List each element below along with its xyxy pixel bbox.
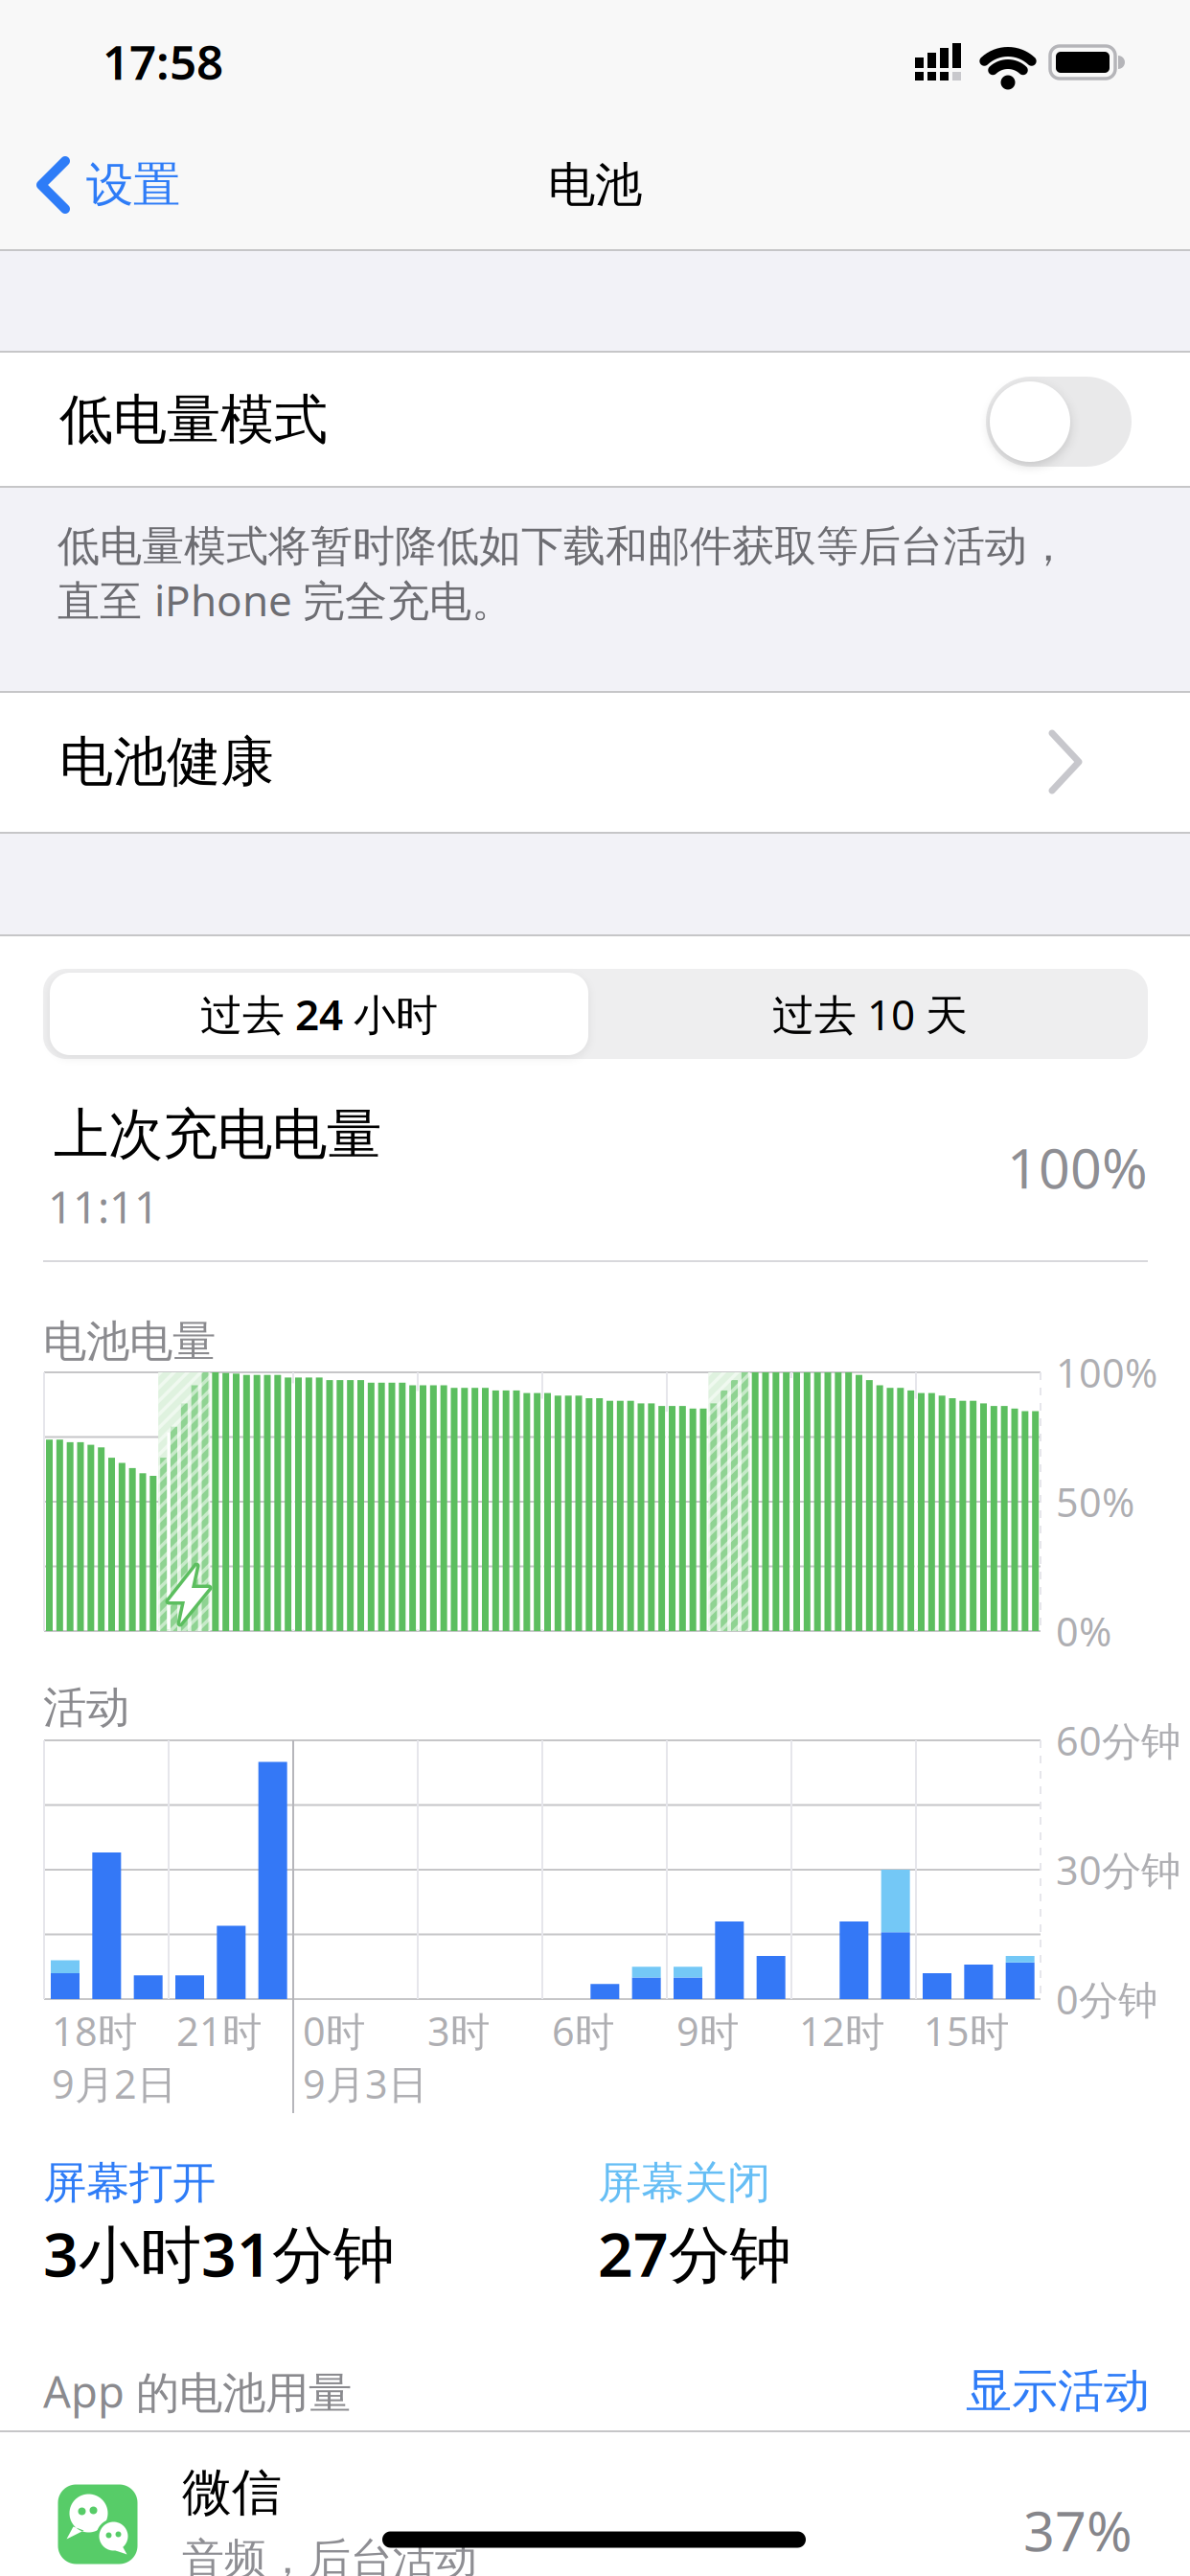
staticText: 18时 bbox=[52, 2004, 137, 2057]
button[interactable]: 过去 24 小时 bbox=[50, 973, 588, 1055]
staticText: 屏幕关闭 bbox=[598, 2156, 770, 2210]
staticText: 60分钟 bbox=[1056, 1714, 1180, 1767]
staticText: 0% bbox=[1056, 1605, 1111, 1657]
staticText: 屏幕打开 bbox=[43, 2156, 216, 2210]
staticText: 37% bbox=[1023, 2493, 1133, 2566]
staticText: 100% bbox=[1056, 1346, 1157, 1399]
staticText: 显示活动 bbox=[966, 2363, 1150, 2419]
staticText: App 的电池用量 bbox=[43, 2362, 352, 2420]
staticText: 6时 bbox=[552, 2004, 614, 2057]
button[interactable]: 电池健康 bbox=[0, 693, 1190, 832]
staticText: 音频，后台活动 bbox=[182, 2533, 477, 2576]
staticText: 11:11 bbox=[48, 1178, 159, 1235]
staticText: 12时 bbox=[799, 2004, 884, 2057]
staticText: 17:58 bbox=[103, 30, 223, 93]
button[interactable]: 返回设置 bbox=[36, 156, 180, 214]
staticText: 上次充电电量 bbox=[54, 1101, 381, 1168]
button[interactable]: 微信 bbox=[0, 2431, 1190, 2576]
staticText: 9月3日 bbox=[303, 2057, 427, 2110]
staticText: 低电量模式将暂时降低如下载和邮件获取等后台活动， bbox=[57, 520, 1069, 572]
staticText: 电池健康 bbox=[59, 729, 274, 795]
staticText: 3时 bbox=[427, 2004, 490, 2057]
staticText: 过去 10 天 bbox=[772, 986, 968, 1042]
staticText: 电池 bbox=[548, 156, 642, 214]
button[interactable]: 低电量模式 bbox=[0, 353, 1190, 486]
staticText: 活动 bbox=[43, 1681, 129, 1734]
staticText: 设置 bbox=[86, 156, 180, 214]
staticText: 低电量模式 bbox=[59, 387, 328, 453]
staticText: 9时 bbox=[676, 2004, 739, 2057]
staticText: 3小时31分钟 bbox=[43, 2212, 395, 2294]
staticText: 27分钟 bbox=[598, 2212, 791, 2294]
staticText: 21时 bbox=[176, 2004, 262, 2057]
staticText: 直至 iPhone 完全充电。 bbox=[57, 572, 514, 628]
staticText: 过去 24 小时 bbox=[200, 986, 438, 1042]
staticText: 30分钟 bbox=[1056, 1843, 1180, 1896]
button[interactable]: 过去 10 天 bbox=[602, 973, 1138, 1055]
staticText: 0时 bbox=[303, 2004, 365, 2057]
staticText: 9月2日 bbox=[52, 2057, 176, 2110]
staticText: 电池电量 bbox=[43, 1315, 216, 1368]
staticText: 50% bbox=[1056, 1475, 1134, 1528]
button[interactable]: 显示活动 bbox=[966, 2363, 1150, 2419]
staticText: 微信 bbox=[182, 2462, 282, 2523]
staticText: 15时 bbox=[924, 2004, 1009, 2057]
staticText: 100% bbox=[1007, 1131, 1148, 1204]
staticText: 0分钟 bbox=[1056, 1973, 1157, 2025]
